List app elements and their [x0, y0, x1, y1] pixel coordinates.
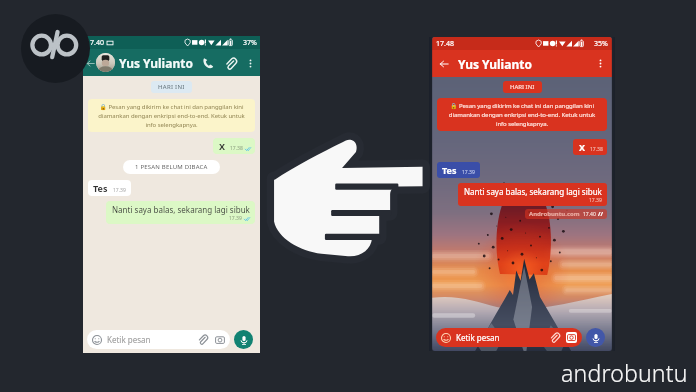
button[interactable]: Nanti saya balas, sekarang lagi sibuk [112, 204, 250, 222]
button[interactable]: X [579, 141, 603, 153]
button[interactable]: 🔒 Pesan yang dikirim ke chat ini dan pan… [94, 103, 249, 128]
staticText: Nanti saya balas, sekarang lagi sibuk [112, 204, 250, 215]
staticText: androbuntu [561, 357, 688, 388]
button[interactable]: Voice message [586, 328, 605, 347]
staticText: 17.40 [583, 211, 596, 218]
staticText: Nanti saya balas, sekarang lagi sibuk [464, 186, 602, 197]
button[interactable]: Attach [549, 332, 560, 343]
staticText: 17.39 [589, 197, 602, 204]
button[interactable]: Back [83, 49, 260, 76]
staticText: HARI INI [158, 83, 185, 91]
button[interactable]: X [219, 140, 251, 152]
staticText: 🔒 Pesan yang dikirim ke chat ini dan pan… [94, 103, 249, 128]
staticText: 17.48 [436, 39, 454, 49]
button[interactable]: Tes [442, 164, 475, 176]
button[interactable]: More options [593, 56, 608, 71]
staticText: 17.38 [590, 146, 603, 153]
button[interactable]: Attach [222, 55, 238, 71]
staticText: 1 PESAN BELUM DIBACA [135, 163, 208, 171]
button[interactable]: Ketik pesan [441, 328, 577, 347]
staticText: 37% [243, 38, 257, 48]
button[interactable]: Call [200, 55, 216, 71]
button[interactable]: 1 PESAN BELUM DIBACA [135, 163, 208, 171]
button[interactable]: Back [432, 50, 612, 77]
staticText: 17.38 [230, 145, 243, 152]
staticText: // [598, 210, 603, 218]
button[interactable]: Back [437, 57, 451, 71]
button[interactable]: Tes [93, 182, 126, 194]
staticText: HARI INI [510, 83, 535, 91]
button[interactable]: Camera [566, 332, 577, 343]
button[interactable]: Back [84, 57, 96, 69]
staticText: 17.39 [229, 215, 242, 222]
button[interactable]: Androbuntu.com [529, 210, 603, 218]
staticText: 🔒 Pesan yang dikirim ke chat ini dan pan… [443, 102, 601, 127]
staticText: Tes [93, 182, 108, 194]
staticText: Ketik pesan [107, 334, 151, 345]
staticText: 35% [594, 39, 608, 49]
button[interactable]: 🔒 Pesan yang dikirim ke chat ini dan pan… [443, 102, 601, 127]
button[interactable]: Ketik pesan [92, 330, 225, 349]
staticText: Yus Yulianto [458, 56, 532, 72]
staticText: Ketik pesan [456, 332, 500, 343]
staticText: X [579, 141, 586, 153]
staticText: X [219, 140, 226, 152]
button[interactable]: Nanti saya balas, sekarang lagi sibuk [464, 186, 602, 204]
staticText: Yus Yulianto [119, 55, 193, 71]
staticText: Tes [442, 164, 457, 176]
button[interactable]: HARI INI [158, 83, 185, 91]
button[interactable]: More options [243, 56, 257, 70]
button[interactable]: Camera [214, 334, 225, 345]
button[interactable]: Voice message [234, 330, 253, 349]
button[interactable]: Attach [197, 334, 208, 345]
staticText: Androbuntu.com [529, 210, 580, 218]
staticText: 17.39 [113, 187, 126, 194]
staticText: 17.39 [462, 169, 475, 176]
staticText: 17.40 [86, 38, 104, 48]
button[interactable]: HARI INI [510, 83, 535, 91]
